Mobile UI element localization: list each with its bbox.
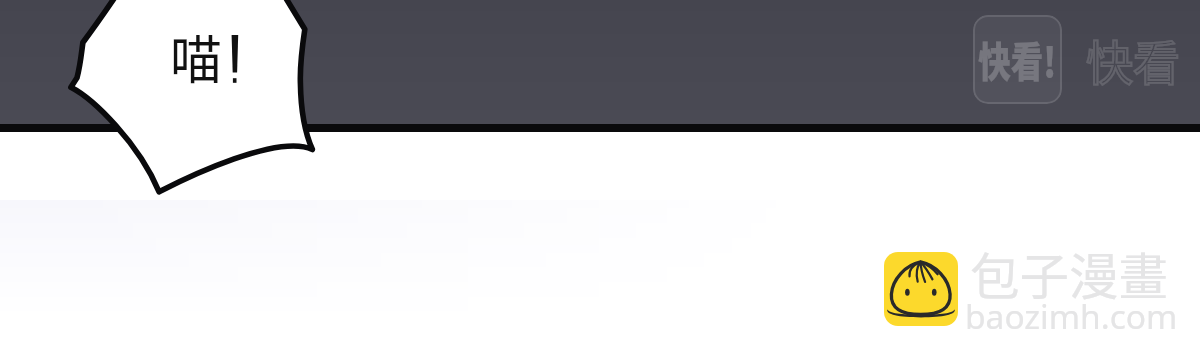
staticText: 快看 <box>1086 25 1180 93</box>
staticText: 喵 <box>170 19 223 94</box>
staticText: 包子漫畫 <box>970 238 1168 310</box>
staticText: baozimh.com <box>965 293 1178 339</box>
staticText: 快看! <box>978 30 1057 89</box>
